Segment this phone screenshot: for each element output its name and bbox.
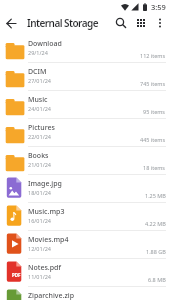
button[interactable]: Music.mp3 xyxy=(0,203,169,231)
staticText: 16/01/24 xyxy=(28,217,51,224)
staticText: 18/01/24 xyxy=(28,189,51,196)
staticText: 4.22 MB xyxy=(145,220,166,227)
staticText: 745 items xyxy=(140,80,166,87)
staticText: 11/01/24 xyxy=(28,273,51,280)
staticText: 22/01/24 xyxy=(28,133,51,140)
staticText: Pictures xyxy=(28,123,55,133)
button[interactable]: Download xyxy=(0,35,169,63)
staticText: 6.8 MB xyxy=(148,276,166,283)
staticText: 18 items xyxy=(143,164,166,171)
staticText: Music.mp3 xyxy=(28,207,65,217)
button[interactable] xyxy=(111,13,131,33)
staticText: Music xyxy=(28,95,48,105)
staticText: 1.88 GB xyxy=(146,248,166,255)
staticText: 445 items xyxy=(140,136,166,143)
button[interactable]: Books xyxy=(0,147,169,175)
staticText: 21/01/24 xyxy=(28,161,51,168)
staticText: 27/01/24 xyxy=(28,77,51,84)
staticText: PDF xyxy=(12,272,21,278)
staticText: 95 items xyxy=(143,108,166,115)
staticText: Image.jpg xyxy=(28,179,62,189)
staticText: 1.25 MB xyxy=(145,192,166,199)
button[interactable]: PDF xyxy=(0,259,169,287)
staticText: Download xyxy=(28,39,62,49)
button[interactable]: DCIM xyxy=(0,63,169,91)
button[interactable]: Pictures xyxy=(0,119,169,147)
staticText: 29/1/24 xyxy=(28,49,48,56)
staticText: Notes.pdf xyxy=(28,263,61,273)
staticText: Internal Storage xyxy=(27,16,99,30)
button[interactable]: Movies.mp4 xyxy=(0,231,169,259)
button[interactable] xyxy=(0,13,22,33)
button[interactable]: Music xyxy=(0,91,169,119)
staticText: 12/01/24 xyxy=(28,245,51,252)
staticText: Ziparchive.zip xyxy=(28,291,74,300)
button[interactable] xyxy=(151,14,169,32)
staticText: 3:59 xyxy=(151,2,166,12)
staticText: Books xyxy=(28,151,49,161)
staticText: 24/01/24 xyxy=(28,105,51,112)
button[interactable]: Ziparchive.zip xyxy=(0,287,169,300)
button[interactable] xyxy=(131,13,151,33)
staticText: DCIM xyxy=(28,67,47,77)
staticText: Movies.mp4 xyxy=(28,235,69,245)
button[interactable]: Image.jpg xyxy=(0,175,169,203)
staticText: 112 items xyxy=(140,52,166,59)
